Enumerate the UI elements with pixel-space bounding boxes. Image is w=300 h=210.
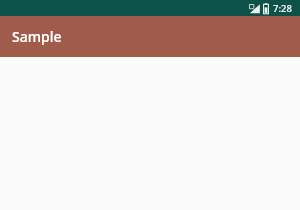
other: Mobile signal [249, 3, 260, 14]
button[interactable]: Sample [0, 16, 300, 57]
other: Battery [263, 3, 269, 14]
staticText: Sample [12, 27, 62, 46]
staticText: 7:28 [273, 2, 292, 15]
